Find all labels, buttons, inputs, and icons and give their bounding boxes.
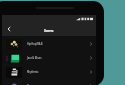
button[interactable]: Jazz & Blues <box>2 51 96 65</box>
button[interactable]: Back <box>2 22 16 36</box>
button[interactable]: HipHop/R&B <box>2 37 96 51</box>
button[interactable]: Rhythmic <box>2 65 96 79</box>
staticText: Pop <box>27 84 88 85</box>
staticText: Genres <box>44 29 54 33</box>
staticText: Rhythmic <box>27 70 88 74</box>
staticText: Jazz & Blues <box>27 56 88 60</box>
staticText: HipHop/R&B <box>27 42 88 46</box>
button[interactable]: Pop <box>2 79 96 85</box>
